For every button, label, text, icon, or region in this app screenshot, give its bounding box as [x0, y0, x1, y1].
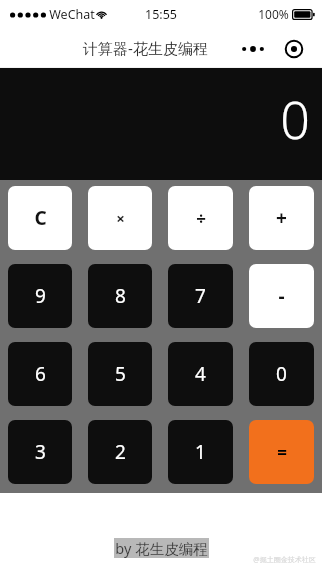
- staticText: @掘土圈金技术社区: [253, 555, 316, 565]
- staticText: 3: [35, 439, 46, 465]
- button[interactable]: 7: [168, 264, 233, 328]
- staticText: 15:55: [145, 6, 177, 23]
- button[interactable]: 5: [88, 342, 152, 406]
- staticText: 9: [35, 283, 46, 309]
- staticText: C: [34, 205, 47, 231]
- staticText: 4: [195, 361, 206, 387]
- staticText: 计算器-花生皮编程: [83, 38, 208, 58]
- staticText: WeChat: [49, 6, 95, 23]
- staticText: 0: [276, 361, 287, 387]
- staticText: +: [276, 205, 287, 231]
- button[interactable]: 3: [8, 420, 72, 484]
- button[interactable]: Close mini program: [279, 37, 309, 61]
- button[interactable]: =: [249, 420, 314, 484]
- staticText: =: [277, 441, 287, 464]
- button[interactable]: 1: [168, 420, 233, 484]
- staticText: ×: [116, 208, 125, 228]
- staticText: 1: [195, 439, 206, 465]
- staticText: ÷: [196, 207, 206, 230]
- button[interactable]: -: [249, 264, 314, 328]
- button[interactable]: More menu: [235, 39, 271, 59]
- staticText: 100%: [258, 6, 289, 22]
- staticText: by 花生皮编程: [115, 538, 208, 558]
- button[interactable]: ÷: [168, 186, 233, 250]
- staticText: 0: [280, 83, 310, 154]
- button[interactable]: +: [249, 186, 314, 250]
- button[interactable]: 2: [88, 420, 152, 484]
- staticText: 2: [115, 439, 126, 465]
- staticText: -: [278, 283, 285, 309]
- staticText: 8: [115, 283, 126, 309]
- button[interactable]: 9: [8, 264, 72, 328]
- staticText: 7: [195, 283, 206, 309]
- staticText: 6: [35, 361, 46, 387]
- button[interactable]: More menu: [228, 34, 316, 63]
- staticText: 5: [115, 361, 126, 387]
- button[interactable]: ×: [88, 186, 152, 250]
- button[interactable]: 4: [168, 342, 233, 406]
- button[interactable]: 8: [88, 264, 152, 328]
- button[interactable]: 0: [249, 342, 314, 406]
- button[interactable]: 6: [8, 342, 72, 406]
- button[interactable]: by 花生皮编程: [115, 538, 208, 558]
- button[interactable]: C: [8, 186, 72, 250]
